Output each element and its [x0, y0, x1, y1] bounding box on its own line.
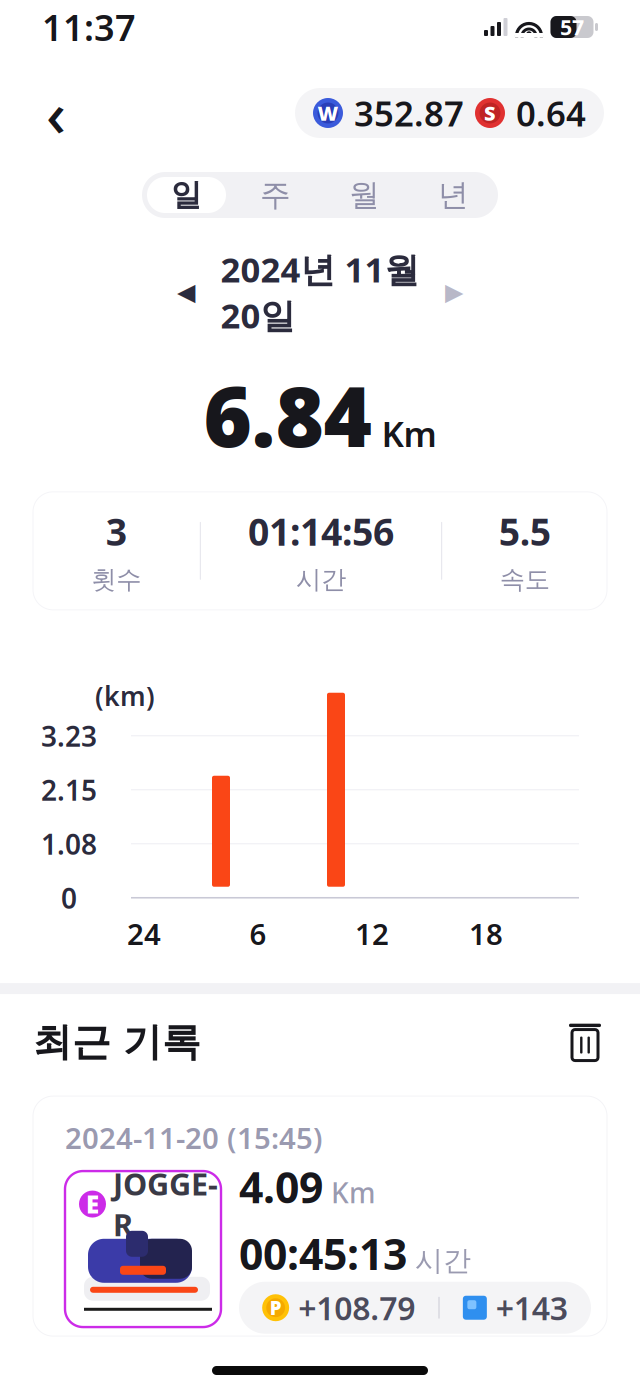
staticText: 시간 [296, 564, 346, 595]
staticText: 일 [171, 176, 202, 214]
staticText: Km [331, 1174, 376, 1211]
staticText: 4.09 [239, 1158, 323, 1215]
button[interactable]: 일 [142, 172, 231, 218]
staticText: 2024년 11월 20일 [220, 246, 419, 338]
staticText: 24 [127, 914, 161, 953]
staticText: 2.15 [41, 771, 97, 808]
staticText: 횟수 [91, 564, 141, 595]
staticText: W [317, 100, 338, 126]
staticText: 11:37 [42, 3, 136, 51]
staticText: 5.5 [499, 506, 551, 556]
staticText: JOGGER [113, 1163, 218, 1245]
staticText: 월 [349, 176, 380, 214]
staticText: +108.79 [298, 1286, 415, 1329]
staticText: (km) [95, 678, 155, 713]
staticText: +143 [496, 1286, 568, 1329]
button[interactable]: Token balance [295, 88, 604, 138]
staticText: 18 [469, 914, 503, 953]
button[interactable]: 주 [231, 172, 320, 218]
staticText: ◀ [177, 278, 195, 306]
button[interactable]: 년 [409, 172, 498, 218]
staticText: S [484, 100, 496, 126]
button[interactable]: 월 [320, 172, 409, 218]
staticText: 2024-11-20 (15:45) [65, 1118, 323, 1157]
staticText: 0 [61, 879, 77, 916]
staticText: 01:14:56 [248, 506, 394, 556]
staticText: ▶ [445, 278, 463, 306]
staticText: 시간 [415, 1243, 471, 1278]
staticText: 년 [438, 176, 469, 214]
staticText: 00:45:13 [239, 1225, 407, 1282]
staticText: P [270, 1295, 282, 1320]
staticText: 12 [355, 914, 389, 953]
staticText: 1.08 [41, 825, 97, 862]
staticText: 0.64 [516, 90, 586, 136]
staticText: 3.23 [41, 717, 97, 754]
staticText: 최근 기록 [33, 1018, 201, 1066]
staticText: 주 [260, 176, 291, 214]
button[interactable]: Delete records [560, 1017, 610, 1067]
staticText: 352.87 [354, 90, 464, 136]
staticText: 3 [106, 506, 127, 556]
staticText: 속도 [500, 564, 550, 595]
staticText: 57 [560, 13, 584, 41]
staticText: E [86, 1188, 99, 1220]
staticText: 6.84 [203, 360, 371, 470]
button[interactable]: Back [28, 85, 84, 141]
staticText: 6 [249, 914, 266, 953]
staticText: ‹ [46, 72, 66, 154]
button[interactable]: Next day [430, 270, 478, 314]
staticText: Km [381, 411, 436, 457]
button[interactable]: 2024-11-20 (15:45) [33, 1096, 607, 1336]
button[interactable]: Previous day [162, 270, 210, 314]
